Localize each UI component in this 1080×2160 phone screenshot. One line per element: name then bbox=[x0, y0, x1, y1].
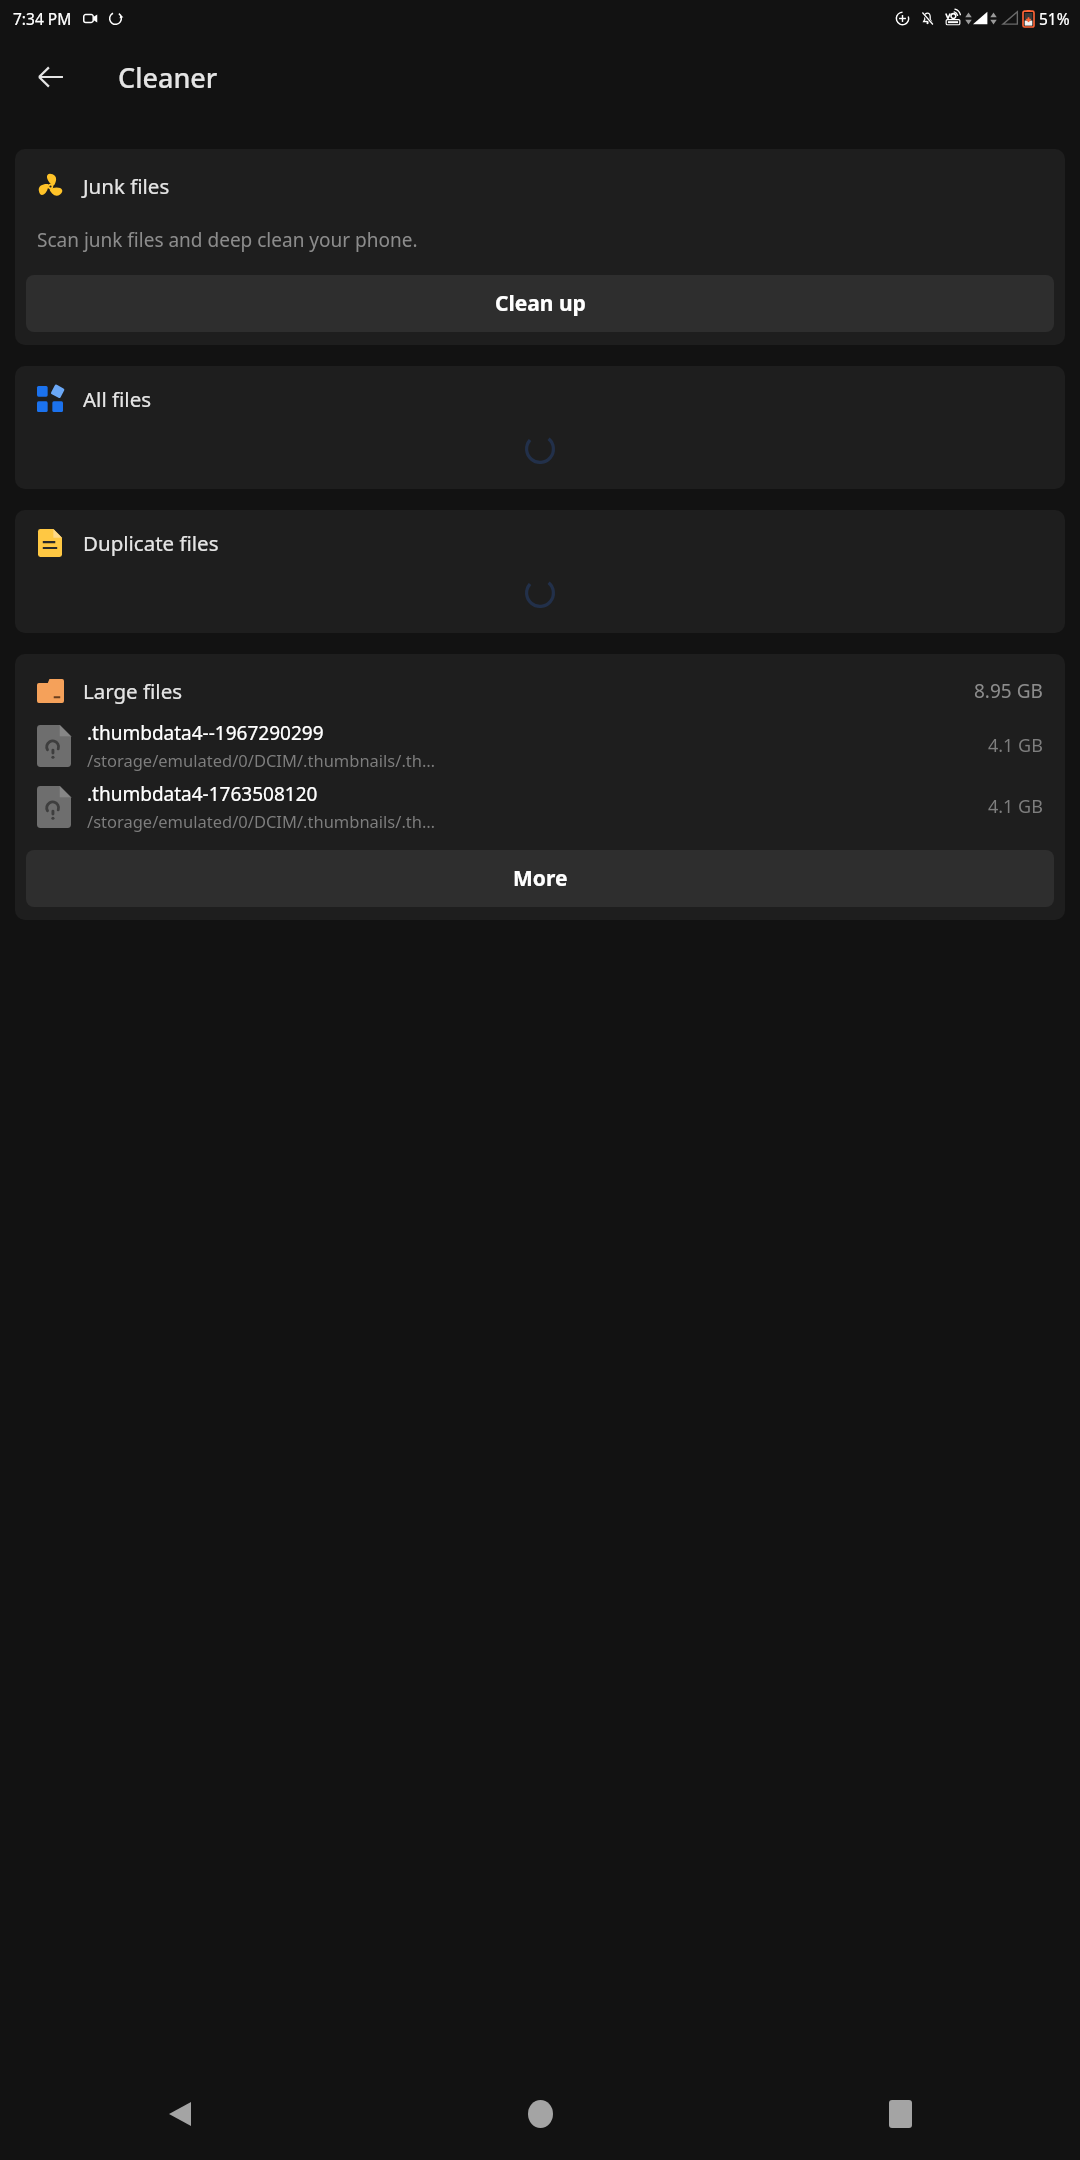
staticText: 51% bbox=[1039, 8, 1070, 29]
button[interactable]: Duplicate files bbox=[15, 510, 1065, 633]
staticText: Scan junk files and deep clean your phon… bbox=[37, 227, 418, 253]
staticText: 7:34 PM bbox=[13, 8, 72, 29]
staticText: /storage/emulated/0/DCIM/.thumbnails/.th… bbox=[87, 810, 436, 832]
button[interactable]: Large files bbox=[15, 654, 1065, 920]
staticText: Large files bbox=[83, 677, 183, 705]
staticText: 4.1 GB bbox=[988, 733, 1043, 758]
button[interactable]: .thumbdata4--1967290299 bbox=[37, 720, 1043, 771]
staticText: Clean up bbox=[495, 289, 586, 318]
button[interactable]: More bbox=[26, 850, 1054, 907]
button[interactable]: Recents bbox=[720, 2068, 1080, 2160]
button[interactable]: .thumbdata4-1763508120 bbox=[37, 781, 1043, 832]
staticText: More bbox=[513, 864, 568, 893]
button[interactable]: All files bbox=[15, 366, 1065, 489]
staticText: Duplicate files bbox=[83, 529, 219, 557]
button[interactable]: Back bbox=[0, 2068, 360, 2160]
staticText: .thumbdata4--1967290299 bbox=[87, 720, 324, 746]
button[interactable]: Home bbox=[360, 2068, 720, 2160]
staticText: 4.1 GB bbox=[988, 794, 1043, 819]
staticText: /storage/emulated/0/DCIM/.thumbnails/.th… bbox=[87, 749, 436, 771]
button[interactable]: Junk files bbox=[15, 149, 1065, 345]
staticText: Junk files bbox=[83, 172, 170, 200]
staticText: .thumbdata4-1763508120 bbox=[87, 781, 318, 807]
staticText: 8.95 GB bbox=[974, 678, 1043, 704]
button[interactable]: Back bbox=[20, 46, 82, 108]
staticText: Cleaner bbox=[118, 59, 218, 96]
button[interactable]: Clean up bbox=[26, 275, 1054, 332]
staticText: All files bbox=[83, 385, 152, 413]
